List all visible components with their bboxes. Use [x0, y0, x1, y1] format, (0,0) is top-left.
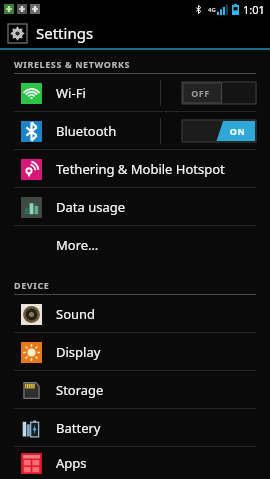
button[interactable]: Apps [0, 447, 270, 479]
button[interactable]: OFF [182, 82, 256, 104]
staticText: Data usage [56, 198, 126, 216]
staticText: OFF [182, 87, 219, 99]
staticText: 4G [208, 6, 216, 14]
staticText: More… [56, 236, 99, 254]
staticText: Sound [56, 305, 96, 323]
button[interactable]: Data usage [0, 188, 270, 225]
button[interactable]: Storage [0, 371, 270, 408]
button[interactable]: Sound [0, 295, 270, 332]
button[interactable]: Display [0, 333, 270, 370]
button[interactable]: More… [0, 226, 270, 263]
staticText: Wi-Fi [56, 84, 86, 102]
staticText: 1:01 [243, 2, 265, 17]
staticText: DEVICE [14, 279, 50, 291]
other: Settings app icon [8, 24, 27, 43]
button[interactable]: Wi-Fi [0, 74, 270, 111]
staticText: WIRELESS & NETWORKS [14, 58, 131, 70]
button[interactable]: Bluetooth [0, 112, 270, 149]
button[interactable]: Tethering & Mobile Hotspot [0, 150, 270, 187]
staticText: Display [56, 343, 101, 361]
button[interactable]: Settings app icon [0, 18, 270, 48]
staticText: Battery [56, 419, 101, 437]
staticText: Storage [56, 381, 104, 399]
button[interactable]: ON [182, 120, 256, 142]
staticText: Settings [36, 23, 94, 43]
staticText: Bluetooth [56, 122, 117, 140]
staticText: Apps [56, 454, 87, 472]
staticText: Tethering & Mobile Hotspot [56, 160, 225, 178]
button[interactable]: Battery [0, 409, 270, 446]
staticText: ON [219, 125, 256, 137]
